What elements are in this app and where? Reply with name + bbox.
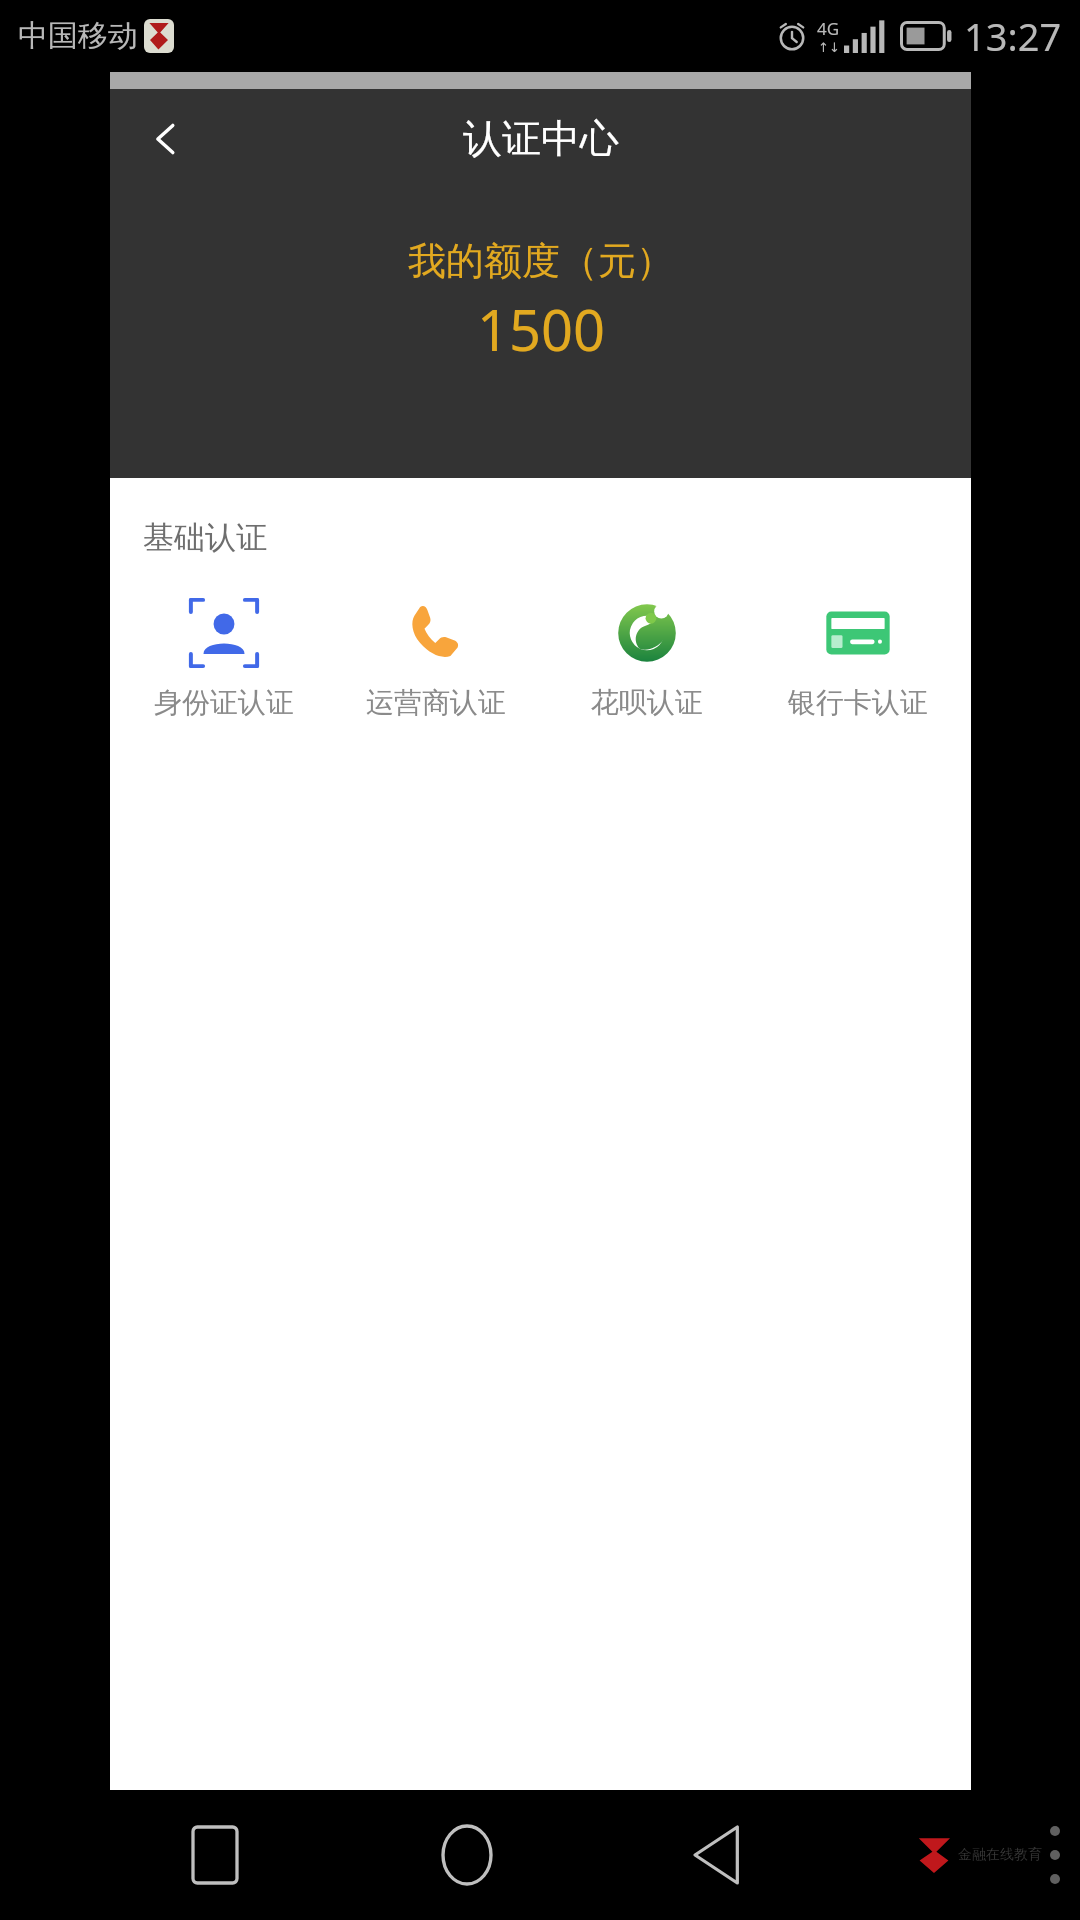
staticText: 身份证认证 xyxy=(154,685,294,720)
staticText: 银行卡认证 xyxy=(788,685,928,720)
staticText: 运营商认证 xyxy=(366,685,506,720)
staticText: 我的额度（元） xyxy=(408,237,674,285)
button[interactable]: 身份证认证 xyxy=(118,593,330,724)
staticText: 13:27 xyxy=(964,10,1062,62)
staticText: 中国移动 xyxy=(18,17,138,55)
button[interactable]: 运营商认证 xyxy=(330,593,541,724)
button[interactable]: 主页 xyxy=(412,1800,522,1910)
button[interactable]: 返回 xyxy=(663,1800,773,1910)
staticText: 1500 xyxy=(477,291,606,367)
button[interactable]: 银行卡认证 xyxy=(752,593,963,724)
staticText: 4G xyxy=(817,17,840,40)
button[interactable]: 花呗认证 xyxy=(541,593,752,724)
staticText: 金融在线教育 xyxy=(958,1846,1042,1864)
staticText: 花呗认证 xyxy=(591,685,703,720)
staticText: 基础认证 xyxy=(143,518,267,557)
staticText: 认证中心 xyxy=(463,114,619,163)
button[interactable]: 返回 xyxy=(124,97,208,181)
staticText: ↑↓ xyxy=(818,40,840,55)
button[interactable]: 最近任务 xyxy=(160,1800,270,1910)
